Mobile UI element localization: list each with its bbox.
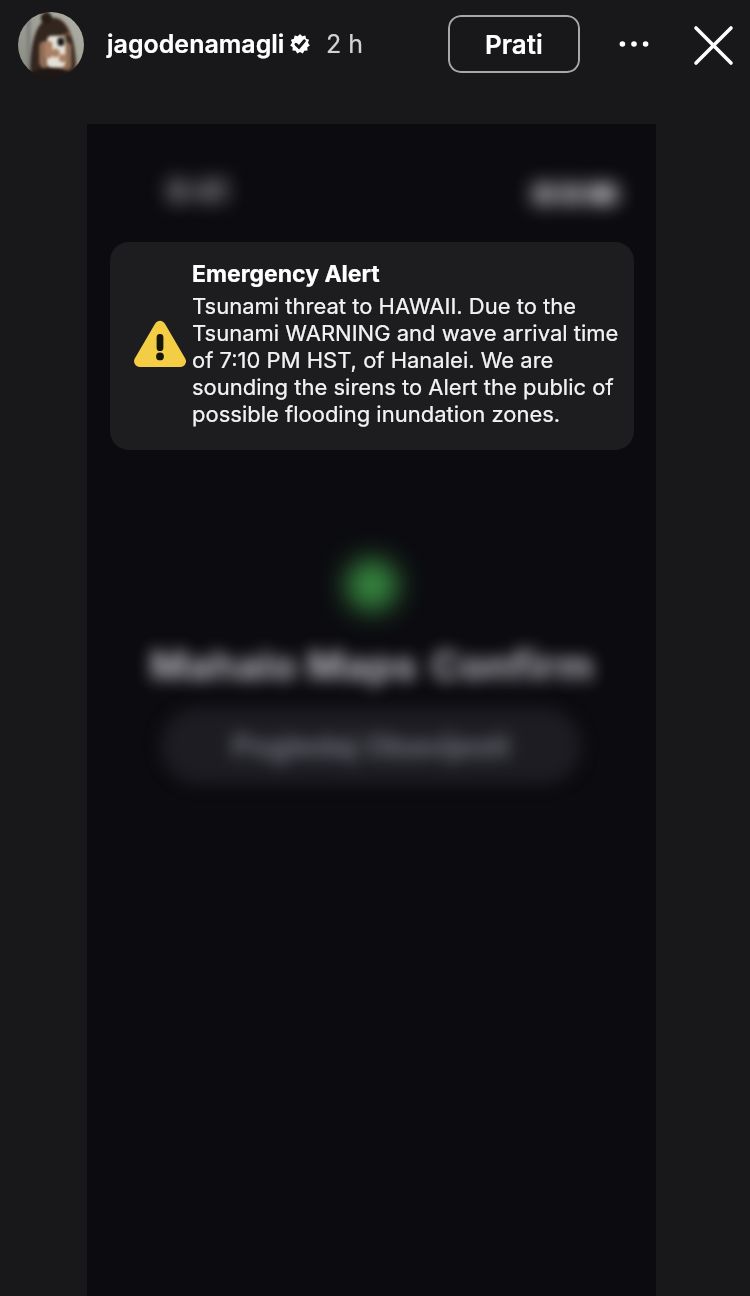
staticText: 2 h — [326, 29, 364, 59]
staticText: Pogledaj Obavijesti — [232, 728, 510, 764]
staticText: Mahalo Maps — [150, 641, 418, 689]
staticText: jagodenamagli — [107, 29, 285, 59]
button[interactable]: More options — [609, 19, 659, 69]
staticText: Tsunami threat to HAWAII. Due to the Tsu… — [192, 293, 619, 428]
button[interactable]: Prati — [448, 15, 580, 73]
staticText: 9:41 — [167, 173, 228, 209]
staticText: Emergency Alert — [192, 260, 380, 288]
button[interactable]: Close — [685, 17, 741, 73]
staticText: Prati — [485, 29, 543, 60]
button[interactable]: Profile photo — [18, 12, 84, 78]
staticText: Confirm — [431, 641, 594, 689]
